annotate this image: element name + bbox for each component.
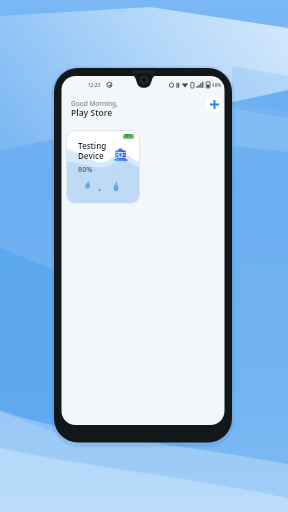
staticText: Good Morning,: [71, 99, 118, 108]
staticText: 48%: [212, 82, 222, 88]
button[interactable]: [206, 96, 223, 113]
staticText: Device: [78, 150, 104, 161]
staticText: Testing: [78, 140, 107, 151]
staticText: 12:23: [88, 82, 101, 89]
staticText: 80%: [78, 164, 93, 174]
button[interactable]: 80%: [67, 131, 139, 203]
staticText: 80%: [125, 134, 132, 138]
staticText: Play Store: [71, 107, 113, 119]
